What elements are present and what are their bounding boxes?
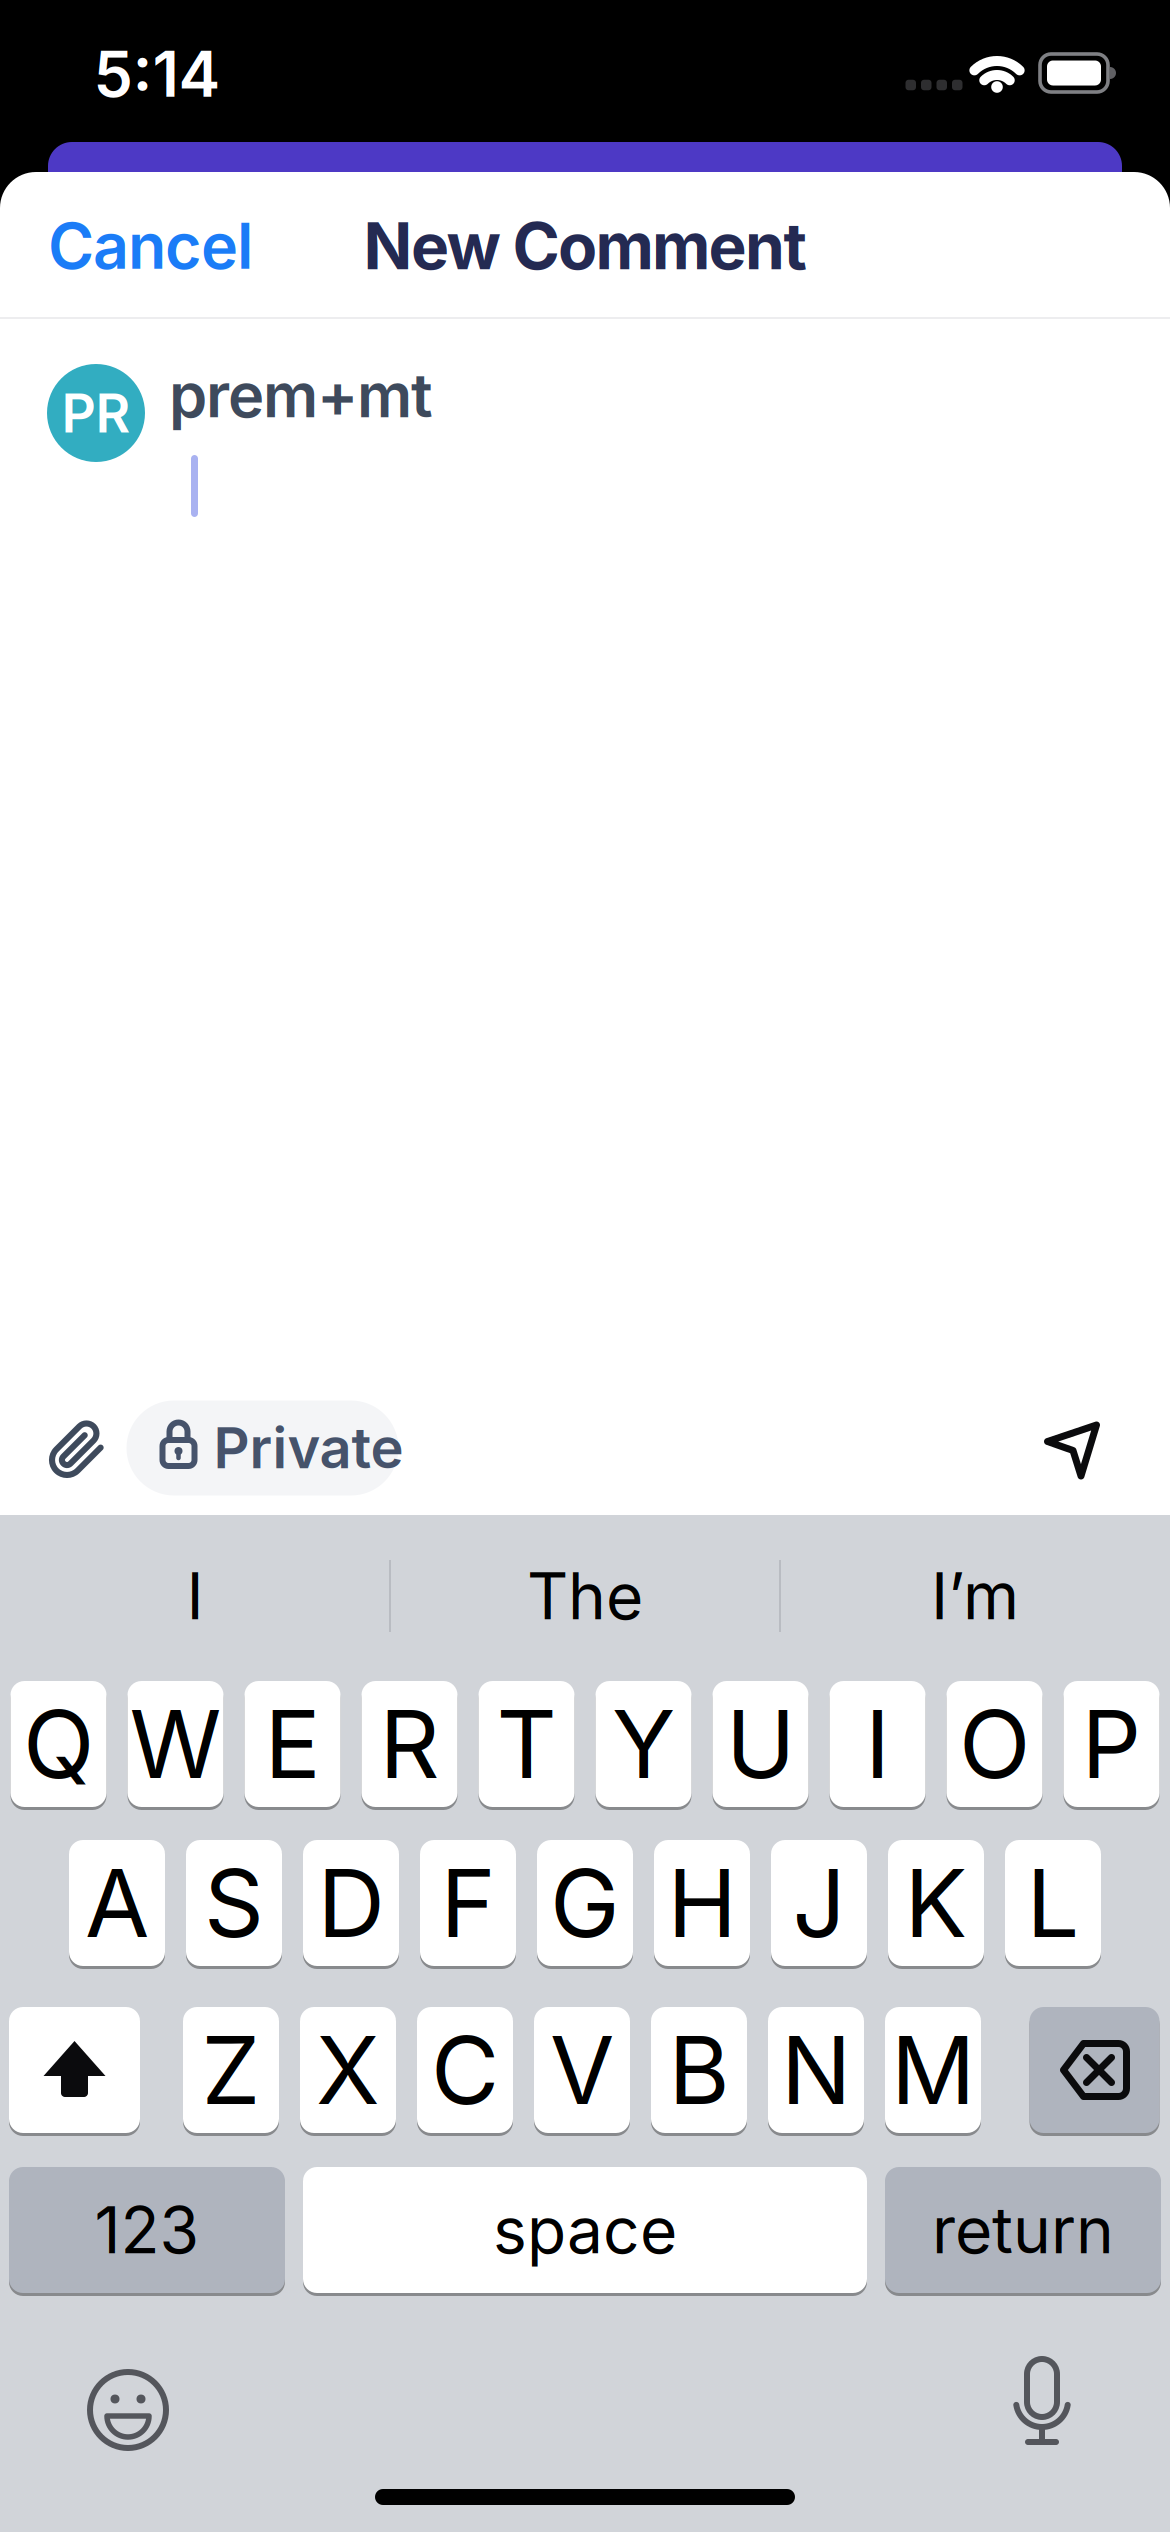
button[interactable]: K (888, 1840, 984, 1966)
staticText: I (186, 1558, 203, 1634)
button[interactable]: 123 (9, 2167, 285, 2293)
button[interactable]: C (417, 2007, 513, 2133)
staticText: V (550, 2015, 614, 2125)
button[interactable]: R (361, 1681, 457, 1807)
button[interactable]: A (69, 1840, 165, 1966)
staticText: F (440, 1848, 495, 1958)
staticText: M (891, 2015, 975, 2125)
button[interactable]: Q (10, 1681, 106, 1807)
button[interactable]: return (885, 2167, 1161, 2293)
button[interactable]: H (654, 1840, 750, 1966)
button[interactable]: G (537, 1840, 633, 1966)
button[interactable]: M (885, 2007, 981, 2133)
staticText: G (550, 1848, 620, 1958)
button[interactable]: The (395, 1541, 775, 1651)
staticText: N (781, 2015, 851, 2125)
staticText: 123 (94, 2192, 199, 2268)
staticText: T (496, 1689, 556, 1799)
button[interactable] (1029, 2007, 1159, 2133)
staticText: Q (23, 1689, 94, 1799)
staticText: Private (213, 1415, 403, 1481)
button[interactable]: V (534, 2007, 630, 2133)
staticText: B (668, 2015, 729, 2125)
button[interactable] (1027, 1405, 1117, 1495)
button[interactable]: F (420, 1840, 516, 1966)
button[interactable]: D (303, 1840, 399, 1966)
button[interactable]: N (768, 2007, 864, 2133)
staticText: C (431, 2015, 499, 2125)
staticText: H (667, 1848, 736, 1958)
button[interactable]: L (1005, 1840, 1101, 1966)
button[interactable]: Private (129, 1400, 401, 1495)
staticText: space (493, 2192, 677, 2268)
staticText: P (1081, 1689, 1141, 1799)
staticText: prem+mt (169, 359, 433, 431)
staticText: PR (61, 381, 130, 444)
button[interactable] (32, 1405, 122, 1495)
button[interactable]: I (829, 1681, 925, 1807)
staticText: E (264, 1689, 320, 1799)
button[interactable]: T (478, 1681, 574, 1807)
staticText: 5:14 (93, 37, 220, 111)
staticText: L (1026, 1848, 1079, 1958)
staticText: W (129, 1689, 221, 1799)
staticText: Z (201, 2015, 260, 2125)
staticText: New Comment (363, 208, 806, 284)
staticText: J (792, 1848, 845, 1958)
button[interactable] (78, 2360, 178, 2460)
staticText: Y (612, 1689, 675, 1799)
button[interactable]: I (5, 1541, 385, 1651)
staticText: O (959, 1689, 1030, 1799)
staticText: A (85, 1848, 149, 1958)
button[interactable]: E (244, 1681, 340, 1807)
button[interactable]: O (946, 1681, 1042, 1807)
staticText: Cancel (48, 209, 253, 283)
staticText: K (904, 1848, 967, 1958)
button[interactable]: Y (595, 1681, 691, 1807)
button[interactable]: W (127, 1681, 223, 1807)
button[interactable]: space (303, 2167, 867, 2293)
staticText: The (527, 1558, 643, 1634)
staticText: X (316, 2015, 380, 2125)
button[interactable]: B (651, 2007, 747, 2133)
button[interactable]: Z (183, 2007, 279, 2133)
button[interactable]: P (1063, 1681, 1159, 1807)
staticText: U (726, 1689, 795, 1799)
button[interactable]: S (186, 1840, 282, 1966)
button[interactable] (992, 2352, 1092, 2462)
button[interactable]: Cancel (48, 196, 448, 296)
button[interactable] (9, 2007, 140, 2133)
staticText: S (204, 1848, 264, 1958)
button[interactable]: U (712, 1681, 808, 1807)
staticText: I (865, 1689, 890, 1799)
button[interactable]: J (771, 1840, 867, 1966)
staticText: R (379, 1689, 439, 1799)
staticText: I’m (931, 1558, 1019, 1634)
button[interactable]: X (300, 2007, 396, 2133)
staticText: D (317, 1848, 384, 1958)
staticText: return (932, 2192, 1114, 2268)
button[interactable]: I’m (785, 1541, 1165, 1651)
